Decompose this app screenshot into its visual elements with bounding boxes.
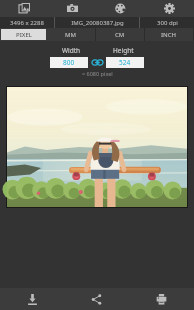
staticText: CM xyxy=(115,31,125,39)
staticText: IMG_20080387.jpg xyxy=(71,19,124,27)
button[interactable] xyxy=(7,87,187,207)
button[interactable]: 524 xyxy=(106,57,144,68)
button[interactable]: 800 xyxy=(50,57,88,68)
staticText: PIXEL xyxy=(16,31,32,39)
staticText: = 6080 pixel xyxy=(82,70,113,77)
staticText: 300 dpi xyxy=(157,19,178,27)
button[interactable]: Share xyxy=(64,288,129,310)
button[interactable]: Save xyxy=(0,288,64,310)
staticText: Height xyxy=(113,46,134,55)
staticText: Width xyxy=(62,46,81,55)
button[interactable]: Filters xyxy=(96,0,145,17)
button[interactable]: Gallery xyxy=(0,0,48,17)
staticText: INCH xyxy=(161,31,177,39)
staticText: 3496 x 2288 xyxy=(10,19,44,27)
button[interactable]: Lock aspect ratio xyxy=(91,57,103,68)
button[interactable]: CM xyxy=(97,29,143,40)
button[interactable]: Camera xyxy=(48,0,96,17)
staticText: 524 xyxy=(119,58,131,67)
staticText: 800 xyxy=(63,58,75,67)
button[interactable]: PIXEL xyxy=(1,29,46,40)
staticText: MM xyxy=(65,31,77,39)
button[interactable]: Print xyxy=(129,288,194,310)
button[interactable]: Settings xyxy=(145,0,194,17)
button[interactable]: MM xyxy=(48,29,94,40)
button[interactable]: INCH xyxy=(146,29,192,40)
